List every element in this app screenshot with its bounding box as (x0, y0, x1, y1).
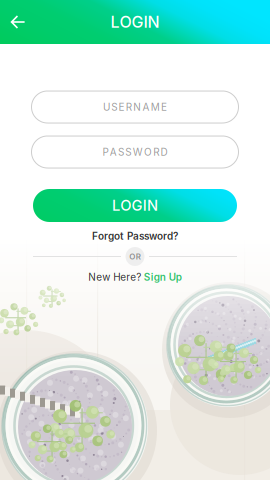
button[interactable]: Forgot Password? (33, 230, 237, 242)
button[interactable]: New Here? (88, 271, 182, 283)
staticText: USERNAME (103, 101, 167, 113)
staticText: Sign Up (144, 271, 182, 283)
button[interactable]: Back (0, 0, 36, 44)
staticText: Forgot Password? (92, 230, 178, 242)
button[interactable]: LOGIN (33, 189, 237, 222)
staticText: LOGIN (110, 12, 159, 32)
button[interactable]: USERNAME (31, 91, 238, 123)
staticText: OR (129, 252, 141, 261)
staticText: PASSWORD (102, 146, 168, 158)
staticText: New Here? (88, 271, 141, 283)
staticText: LOGIN (112, 197, 158, 214)
button[interactable]: PASSWORD (31, 136, 238, 168)
